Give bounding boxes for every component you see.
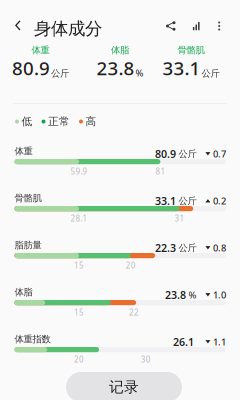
staticText: 公斤 — [178, 242, 196, 254]
staticText: 33.1 — [155, 194, 176, 208]
staticText: 23.8 — [165, 288, 186, 302]
staticText: 31 — [174, 213, 184, 224]
staticText: 81 — [155, 166, 165, 177]
staticText: 高 — [85, 115, 96, 128]
staticText: 体重指数 — [14, 333, 50, 345]
staticText: 体脂 — [14, 286, 32, 298]
button[interactable]: 记录 — [0, 0, 174, 30]
staticText: 正常 — [48, 115, 70, 128]
staticText: % — [135, 67, 143, 79]
staticText: 公斤 — [51, 68, 69, 79]
staticText: % — [188, 289, 196, 301]
staticText: 59.9 — [70, 166, 87, 177]
staticText: 80.9 — [12, 55, 50, 80]
staticText: 脂肪量 — [14, 239, 41, 251]
staticText: 记录 — [109, 378, 139, 396]
staticText: 体脂 — [111, 44, 129, 56]
staticText: 体重 — [31, 44, 49, 56]
staticText: 20 — [126, 260, 136, 271]
staticText: 低 — [21, 115, 32, 128]
staticText: 0.7 — [213, 148, 226, 160]
staticText: 15 — [74, 307, 84, 318]
staticText: 骨骼肌 — [14, 192, 41, 204]
staticText: 1.1 — [213, 336, 226, 348]
staticText: 80.9 — [155, 147, 176, 161]
staticText: 23.8 — [97, 55, 135, 80]
staticText: 28.1 — [70, 213, 87, 224]
staticText: 1.0 — [213, 289, 226, 301]
staticText: 0.2 — [213, 195, 226, 207]
staticText: 0.8 — [213, 242, 226, 254]
staticText: 公斤 — [178, 195, 196, 207]
staticText: 15 — [74, 260, 84, 271]
staticText: 22.3 — [155, 241, 176, 255]
staticText: 身体成分 — [34, 18, 102, 39]
staticText: 公斤 — [178, 148, 196, 160]
staticText: 公斤 — [201, 68, 219, 79]
staticText: 33.1 — [163, 55, 201, 80]
staticText: 骨骼肌 — [177, 44, 204, 56]
staticText: 20 — [74, 354, 84, 365]
staticText: 30 — [141, 354, 151, 365]
staticText: 22 — [129, 307, 139, 318]
staticText: 26.1 — [173, 335, 194, 349]
staticText: 体重 — [14, 145, 32, 157]
